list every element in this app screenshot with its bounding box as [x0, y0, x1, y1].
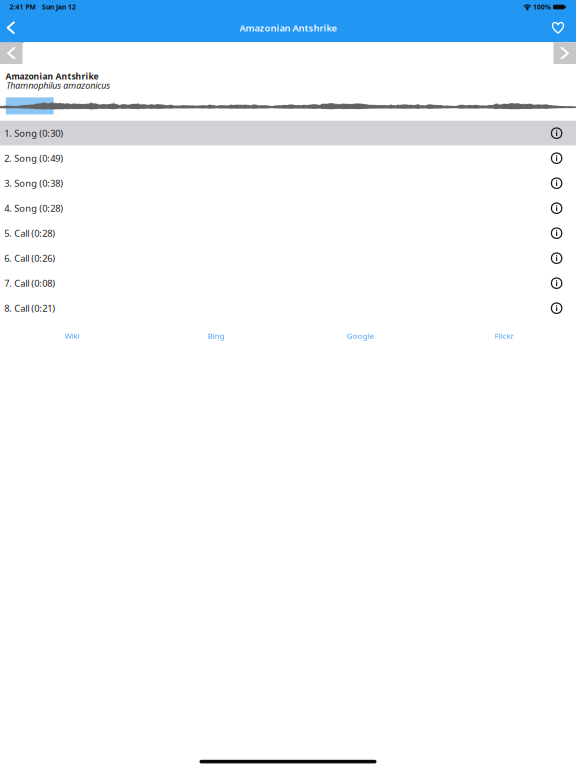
button[interactable]: Wiki — [0, 326, 144, 346]
staticText: 5. Call (0:28) — [4, 227, 55, 239]
button[interactable]: Bing — [144, 326, 288, 346]
staticText: Amazonian Antshrike — [5, 70, 98, 82]
button[interactable]: 6. Call (0:26) — [0, 246, 576, 271]
button[interactable]: 3. Song (0:38) — [0, 171, 576, 196]
button[interactable]: 5. Call (0:28) — [0, 221, 576, 246]
staticText: Flickr — [494, 330, 513, 341]
staticText: 6. Call (0:26) — [4, 252, 55, 264]
button[interactable]: Previous recording — [0, 42, 23, 64]
staticText: Thamnophilus amazonicus — [6, 79, 110, 91]
staticText: 2:41 PM — [10, 2, 36, 11]
button[interactable]: 4. Song (0:28) — [0, 196, 576, 221]
staticText: Wiki — [64, 330, 79, 341]
staticText: 4. Song (0:28) — [4, 202, 63, 214]
button[interactable]: 1. Song (0:30) — [0, 121, 576, 146]
staticText: Google — [346, 330, 373, 341]
button[interactable]: Google — [288, 326, 432, 346]
staticText: 100% — [533, 2, 551, 11]
staticText: Sun Jan 12 — [42, 2, 76, 11]
staticText: 3. Song (0:38) — [4, 177, 63, 189]
button[interactable]: Back — [0, 13, 24, 43]
staticText: 8. Call (0:21) — [4, 302, 55, 314]
button[interactable]: Favorite — [545, 14, 571, 40]
staticText: 2. Song (0:49) — [4, 152, 63, 164]
button[interactable]: 2. Song (0:49) — [0, 146, 576, 171]
staticText: Amazonian Antshrike — [239, 22, 336, 34]
staticText: Bing — [207, 330, 224, 341]
button[interactable]: Next recording — [553, 42, 576, 64]
staticText: 7. Call (0:08) — [4, 277, 55, 289]
button[interactable]: 7. Call (0:08) — [0, 271, 576, 296]
button[interactable]: 8. Call (0:21) — [0, 296, 576, 321]
staticText: 1. Song (0:30) — [4, 127, 63, 139]
button[interactable]: Flickr — [432, 326, 576, 346]
